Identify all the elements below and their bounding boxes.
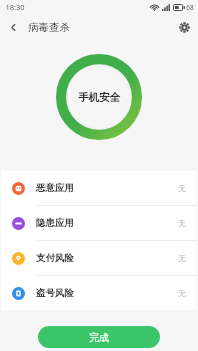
button[interactable]: 完成: [38, 326, 160, 348]
staticText: 支付风险: [36, 252, 74, 264]
staticText: 无: [178, 254, 186, 263]
button[interactable]: Settings: [171, 14, 198, 41]
staticText: 隐患应用: [36, 217, 74, 229]
button[interactable]: 隐患应用: [1, 206, 197, 240]
staticText: 病毒查杀: [28, 21, 70, 34]
staticText: 盗号风险: [36, 287, 74, 299]
staticText: 18:30: [5, 2, 25, 12]
staticText: 手机安全: [78, 91, 120, 104]
button[interactable]: 盗号风险: [1, 276, 197, 310]
button[interactable]: 恶意应用: [1, 171, 197, 205]
button[interactable]: Back: [0, 14, 27, 41]
button[interactable]: 支付风险: [1, 241, 197, 275]
staticText: 恶意应用: [36, 182, 74, 194]
staticText: 无: [178, 289, 186, 298]
staticText: 无: [178, 219, 186, 228]
staticText: 无: [178, 184, 186, 193]
staticText: 完成: [89, 331, 109, 344]
staticText: 68: [186, 3, 194, 12]
